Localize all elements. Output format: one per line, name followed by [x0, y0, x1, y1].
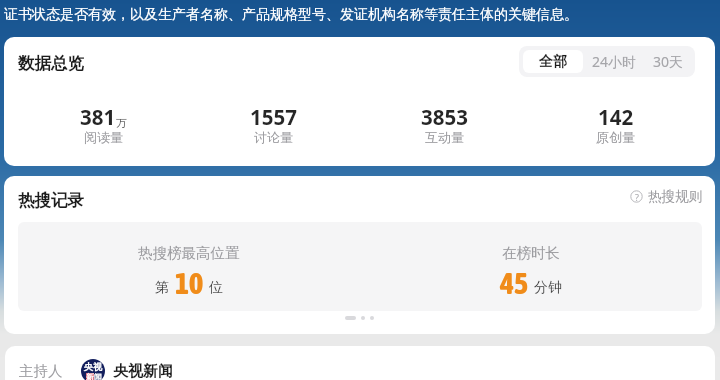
- staticText: 在榜时长: [502, 244, 560, 262]
- staticText: 主持人: [19, 362, 63, 380]
- staticText: 阅读量: [84, 129, 123, 145]
- staticText: 24小时: [592, 52, 637, 71]
- button[interactable]: 热搜榜最高位置: [18, 222, 360, 311]
- staticText: 第: [155, 279, 169, 297]
- button[interactable]: 142: [530, 103, 701, 147]
- staticText: 讨论量: [254, 129, 293, 145]
- staticText: 热搜记录: [18, 190, 84, 211]
- staticText: ?: [635, 191, 639, 203]
- button[interactable]: 30天: [641, 46, 695, 77]
- staticText: 证书状态是否有效，以及生产者名称、产品规格型号、发证机构名称等责任主体的关键信息…: [4, 6, 578, 24]
- staticText: 全部: [539, 53, 567, 71]
- staticText: 热搜榜最高位置: [138, 244, 240, 262]
- button[interactable]: 全部: [523, 50, 583, 73]
- staticText: 142: [598, 103, 634, 131]
- staticText: 央视: [84, 361, 102, 372]
- staticText: 热搜规则: [648, 188, 702, 205]
- staticText: 10: [175, 266, 204, 300]
- staticText: 45: [500, 266, 529, 300]
- staticText: 位: [209, 279, 223, 297]
- staticText: 分钟: [534, 279, 562, 297]
- staticText: 30天: [653, 52, 684, 71]
- button[interactable]: ?: [630, 188, 702, 205]
- button[interactable]: 381: [18, 103, 188, 147]
- staticText: 万: [116, 116, 127, 130]
- staticText: 互动量: [425, 129, 464, 145]
- button[interactable]: 主持人: [19, 346, 715, 380]
- staticText: 1557: [250, 103, 297, 131]
- button[interactable]: 3853: [359, 103, 530, 147]
- staticText: 新闻: [86, 372, 102, 380]
- button[interactable]: 24小时: [587, 46, 641, 77]
- staticText: 数据总览: [18, 53, 84, 74]
- staticText: 381: [80, 103, 116, 131]
- button[interactable]: 在榜时长: [360, 222, 702, 311]
- staticText: 央视新闻: [113, 362, 173, 380]
- button[interactable]: 1557: [188, 103, 359, 147]
- staticText: 3853: [421, 103, 468, 131]
- staticText: 原创量: [596, 129, 635, 145]
